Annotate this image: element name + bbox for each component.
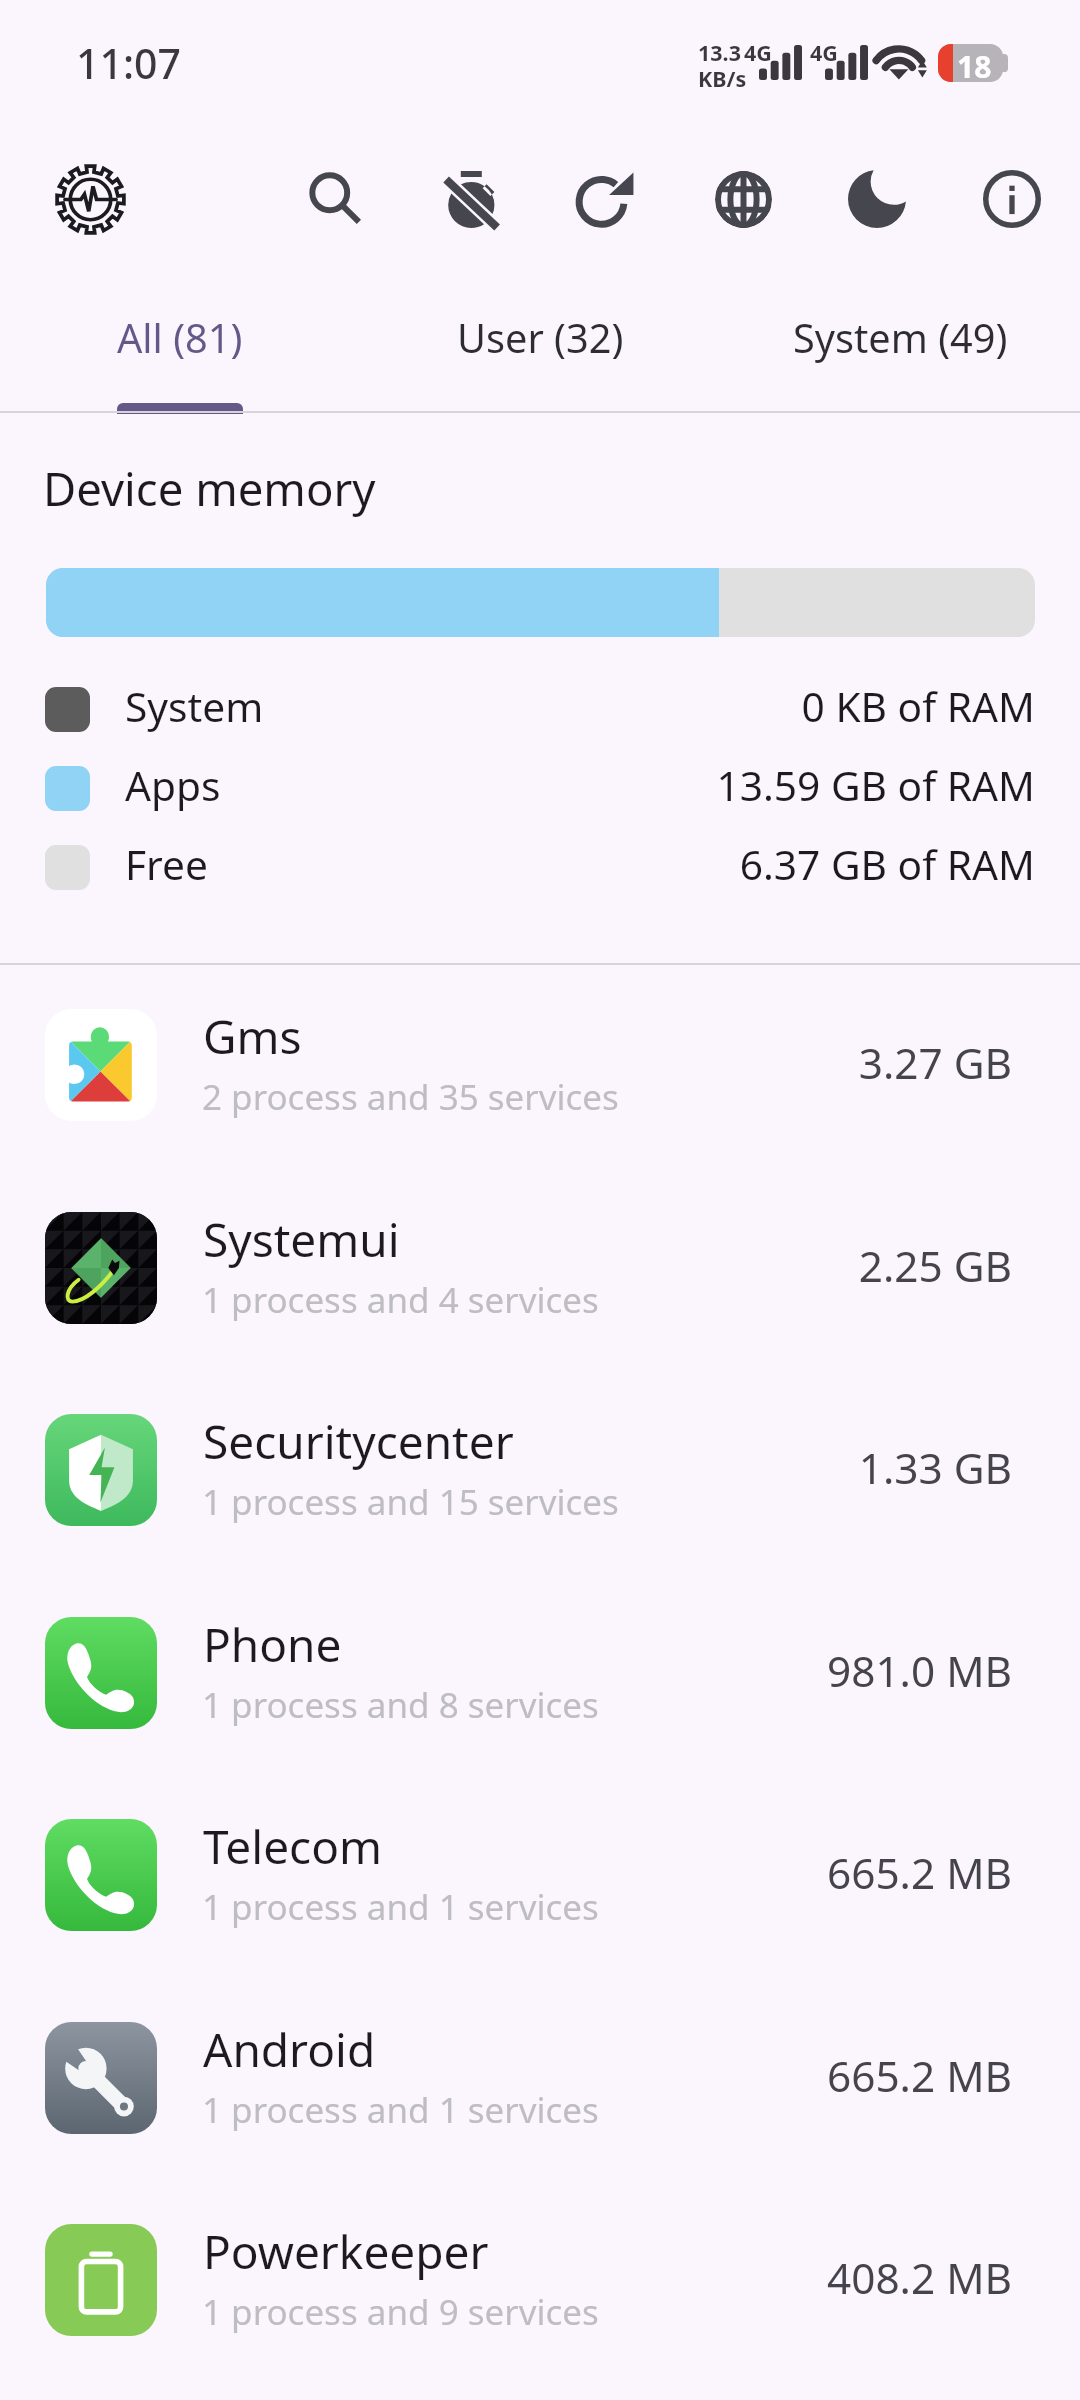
staticText: 18 [957,46,992,84]
staticText: 1 process and 15 services [202,1478,619,1526]
staticText: 11:07 [76,35,181,91]
staticText: 2.25 GB [0,1237,1012,1295]
button[interactable]: Stop timer [416,110,526,288]
button[interactable]: Securitycenter [0,1369,1080,1571]
staticText: System (49) [793,311,1008,365]
staticText: Systemui [203,1208,400,1271]
staticText: Phone [203,1613,342,1676]
staticText: Powerkeeper [203,2220,489,2283]
staticText: Free [125,836,209,891]
staticText: Gms [203,1005,302,1068]
button[interactable]: Network [688,110,798,288]
button[interactable]: Apps [0,755,1080,821]
staticText: KB/s [698,64,747,93]
button[interactable]: User (32) [360,288,720,412]
button[interactable]: System [0,676,1080,742]
staticText: 665.2 MB [0,1844,1012,1902]
staticText: System [125,678,264,733]
staticText: Android [203,2018,376,2081]
button[interactable]: Powerkeeper [0,2179,1080,2381]
staticText: 1 process and 8 services [202,1681,599,1729]
staticText: 1.33 GB [0,1439,1012,1497]
staticText: 665.2 MB [0,2047,1012,2105]
staticText: 981.0 MB [0,1642,1012,1700]
button[interactable]: Dark mode [822,110,932,288]
staticText: 0 KB of RAM [0,678,1035,733]
staticText: Securitycenter [203,1410,514,1473]
button[interactable]: Refresh [551,110,661,288]
staticText: 13.3 [698,38,741,67]
staticText: Telecom [203,1815,383,1878]
staticText: All (81) [117,311,243,365]
button[interactable]: Gms [0,964,1080,1166]
staticText: Apps [125,757,221,812]
staticText: 4G [744,38,772,67]
staticText: User (32) [457,311,624,365]
button[interactable]: Free [0,834,1080,900]
staticText: Device memory [43,457,376,519]
button[interactable]: Android [0,1977,1080,2179]
staticText: 1 process and 1 services [202,1883,599,1931]
staticText: 3.27 GB [0,1034,1012,1092]
staticText: 6.37 GB of RAM [0,836,1035,891]
button[interactable]: Search [281,110,391,288]
button[interactable]: Telecom [0,1774,1080,1976]
staticText: 13.59 GB of RAM [0,757,1035,812]
staticText: 4G [810,38,838,67]
button[interactable]: Info [957,110,1067,288]
button[interactable]: System (49) [720,288,1080,412]
button[interactable]: All (81) [0,288,360,412]
staticText: 1 process and 4 services [202,1276,599,1324]
staticText: 408.2 MB [0,2249,1012,2307]
staticText: 2 process and 35 services [202,1073,619,1121]
button[interactable]: Systemui [0,1167,1080,1369]
button[interactable]: Performance [35,110,145,288]
button[interactable]: Phone [0,1572,1080,1774]
staticText: 1 process and 9 services [202,2288,599,2336]
staticText: 1 process and 1 services [202,2086,599,2134]
